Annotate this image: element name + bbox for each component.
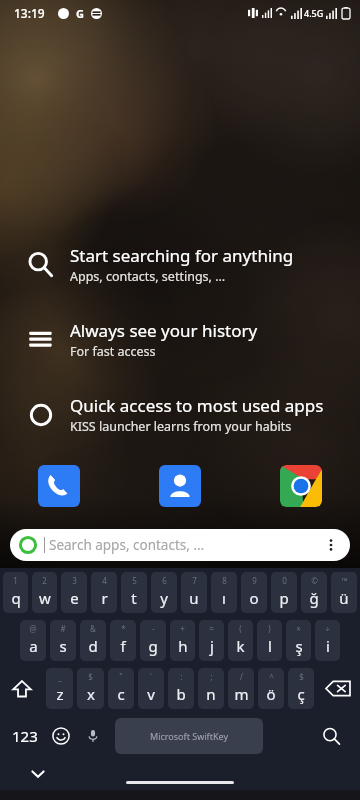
button[interactable]: 2 bbox=[32, 572, 57, 613]
button[interactable]: Phone bbox=[38, 465, 80, 507]
button[interactable]: @ bbox=[20, 620, 46, 661]
staticText: n bbox=[206, 684, 216, 704]
staticText: e bbox=[70, 588, 79, 608]
button[interactable]: Shift bbox=[0, 666, 44, 711]
staticText: ğ bbox=[309, 588, 319, 608]
staticText: w bbox=[39, 588, 51, 608]
button[interactable]: ™ bbox=[331, 572, 357, 613]
staticText: 1 bbox=[13, 575, 18, 586]
button[interactable]: Search bbox=[0, 244, 360, 285]
staticText: Search apps, contacts, … bbox=[49, 536, 205, 554]
button[interactable]: ( bbox=[228, 620, 253, 661]
button[interactable]: © bbox=[301, 572, 327, 613]
button[interactable]: # bbox=[50, 620, 76, 661]
button[interactable]: ^ bbox=[258, 668, 284, 709]
button[interactable]: 3 bbox=[61, 572, 87, 613]
staticText: ' bbox=[150, 671, 152, 682]
button[interactable]: 0 bbox=[271, 572, 297, 613]
staticText: $ bbox=[88, 671, 93, 682]
staticText: + bbox=[180, 623, 185, 634]
button[interactable]: Always see your history bbox=[0, 319, 360, 360]
staticText: Microsoft SwiftKey bbox=[150, 730, 228, 742]
staticText: Quick access to most used apps bbox=[70, 394, 324, 417]
button[interactable]: Microsoft SwiftKey bbox=[115, 718, 263, 754]
staticText: $ bbox=[299, 671, 304, 682]
staticText: ü bbox=[339, 588, 349, 608]
staticText: 6 bbox=[162, 575, 167, 586]
button[interactable]: 123 bbox=[12, 726, 38, 746]
button[interactable]: Search bbox=[318, 723, 344, 749]
button[interactable]: Voice input bbox=[82, 725, 104, 747]
staticText: f bbox=[120, 636, 126, 656]
staticText: 9 bbox=[252, 575, 257, 586]
staticText: j bbox=[210, 636, 214, 656]
staticText: ı bbox=[222, 588, 226, 608]
button[interactable]: 9 bbox=[241, 572, 267, 613]
staticText: h bbox=[178, 636, 188, 656]
staticText: v bbox=[147, 684, 155, 704]
staticText: 7 bbox=[192, 575, 197, 586]
button[interactable]: Contacts bbox=[159, 465, 201, 507]
staticText: 8 bbox=[222, 575, 227, 586]
staticText: m bbox=[234, 684, 249, 704]
button[interactable]: * bbox=[110, 620, 136, 661]
button[interactable]: Search apps, contacts, … bbox=[10, 529, 350, 561]
staticText: @ bbox=[29, 623, 37, 634]
staticText: & bbox=[90, 623, 96, 634]
button[interactable]: 7 bbox=[181, 572, 207, 613]
button[interactable]: & bbox=[80, 620, 106, 661]
staticText: Start searching for anything bbox=[70, 244, 294, 267]
button[interactable]: Hide keyboard bbox=[28, 764, 48, 784]
staticText: 2 bbox=[42, 575, 47, 586]
button[interactable]: 8 bbox=[211, 572, 237, 613]
staticText: b bbox=[176, 684, 186, 704]
button[interactable]: × bbox=[286, 620, 311, 661]
button[interactable]: / bbox=[228, 668, 254, 709]
button[interactable]: Quick access to most used apps bbox=[0, 394, 360, 435]
button[interactable]: " bbox=[108, 668, 134, 709]
staticText: # bbox=[60, 623, 66, 634]
button[interactable]: : bbox=[168, 668, 194, 709]
button[interactable]: 1 bbox=[3, 572, 28, 613]
staticText: u bbox=[189, 588, 199, 608]
staticText: ; bbox=[210, 671, 213, 682]
button[interactable]: 5 bbox=[121, 572, 147, 613]
button[interactable]: ' bbox=[138, 668, 164, 709]
button[interactable]: ; bbox=[198, 668, 224, 709]
button[interactable]: More options bbox=[320, 534, 342, 556]
button[interactable]: 6 bbox=[151, 572, 177, 613]
staticText: l bbox=[268, 636, 272, 656]
staticText: © bbox=[311, 575, 318, 586]
staticText: x bbox=[87, 684, 95, 704]
button[interactable]: $ bbox=[77, 668, 104, 709]
staticText: z bbox=[56, 684, 64, 704]
staticText: ş bbox=[295, 636, 303, 656]
button[interactable]: Chrome bbox=[280, 465, 322, 507]
staticText: y bbox=[160, 588, 168, 608]
staticText: For fast access bbox=[70, 343, 156, 360]
staticText: × bbox=[296, 623, 301, 634]
button[interactable]: _ bbox=[46, 668, 73, 709]
staticText: g bbox=[148, 636, 158, 656]
button[interactable]: ÷ bbox=[315, 620, 340, 661]
staticText: ö bbox=[266, 684, 276, 704]
button[interactable]: + bbox=[170, 620, 195, 661]
staticText: ( bbox=[239, 623, 242, 634]
button[interactable]: = bbox=[199, 620, 224, 661]
staticText: = bbox=[209, 623, 214, 634]
button[interactable]: 4 bbox=[91, 572, 117, 613]
staticText: p bbox=[279, 588, 289, 608]
staticText: 3 bbox=[72, 575, 77, 586]
staticText: ) bbox=[268, 623, 271, 634]
staticText: Always see your history bbox=[70, 319, 258, 342]
button[interactable]: Emoji bbox=[48, 723, 74, 749]
staticText: s bbox=[59, 636, 67, 656]
staticText: k bbox=[236, 636, 245, 656]
button[interactable]: Backspace bbox=[316, 666, 360, 711]
staticText: c bbox=[117, 684, 125, 704]
staticText: ™ bbox=[341, 575, 348, 586]
button[interactable]: $ bbox=[288, 668, 314, 709]
staticText: 4.5G bbox=[304, 7, 324, 19]
button[interactable]: ) bbox=[257, 620, 282, 661]
button[interactable]: - bbox=[140, 620, 166, 661]
